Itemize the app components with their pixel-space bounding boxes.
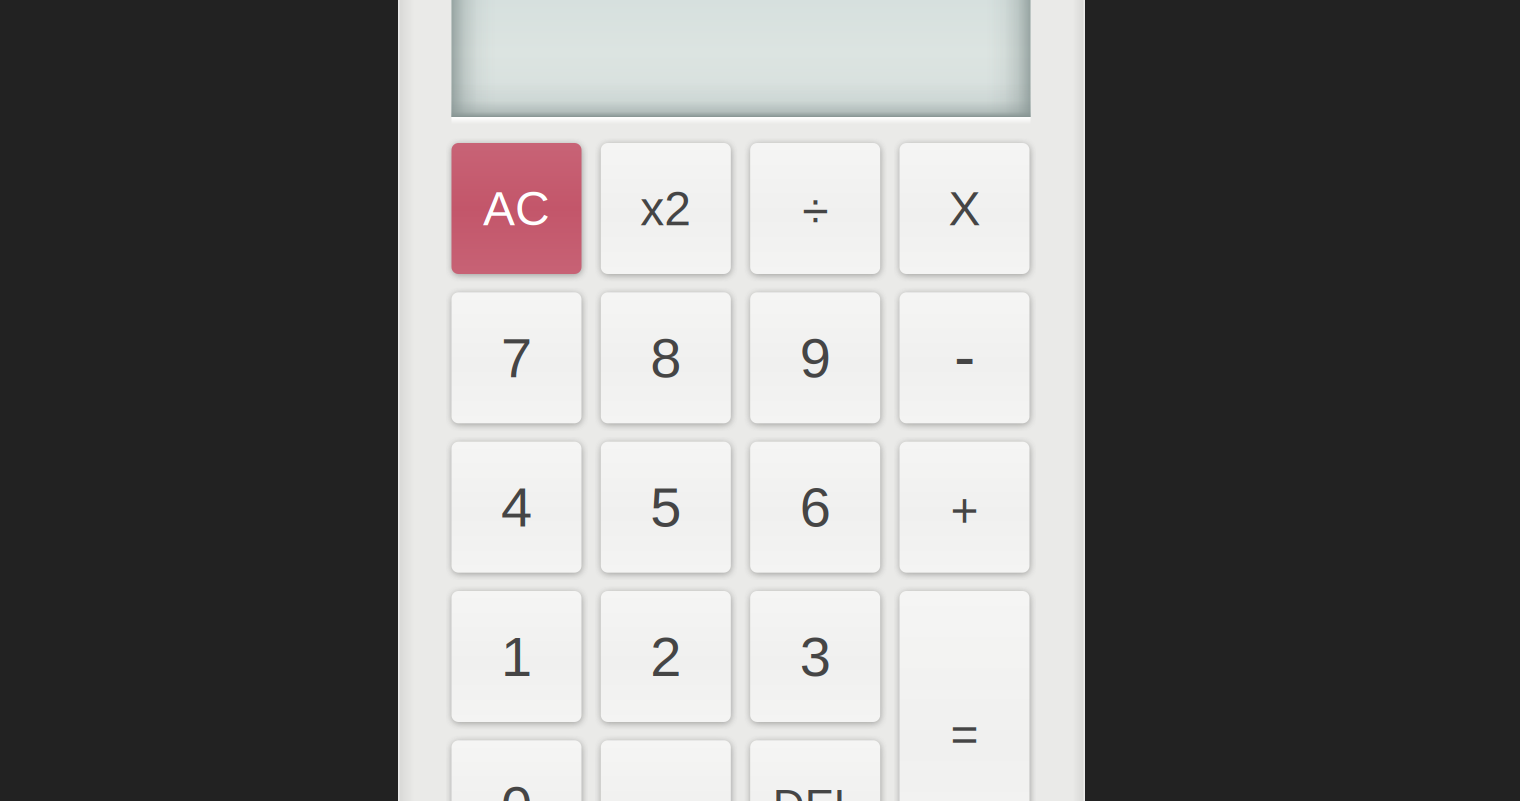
button[interactable]: x2 (601, 143, 731, 274)
button[interactable]: 7 (451, 292, 581, 423)
button[interactable]: 2 (601, 591, 731, 722)
button[interactable]: 9 (750, 292, 880, 423)
button[interactable]: 4 (451, 442, 581, 573)
staticText: 0 (501, 774, 532, 801)
button[interactable]: 8 (601, 292, 731, 423)
staticText: 4 (501, 476, 532, 538)
button[interactable]: 5 (601, 442, 731, 573)
staticText: x2 (640, 182, 691, 235)
button[interactable]: AC (451, 143, 581, 274)
staticText: DEL (773, 781, 858, 801)
staticText: - (954, 321, 975, 393)
staticText: 2 (650, 625, 681, 688)
button[interactable]: X (899, 143, 1029, 274)
button[interactable]: 3 (750, 591, 880, 722)
staticText: AC (483, 182, 550, 235)
staticText: = (950, 707, 978, 761)
button[interactable]: DEL (750, 740, 880, 801)
staticText: 6 (800, 476, 831, 538)
button[interactable]: ÷ (750, 143, 880, 274)
staticText: 8 (650, 326, 681, 389)
staticText: 3 (800, 625, 831, 688)
button[interactable]: 6 (750, 442, 880, 573)
button[interactable]: 0 (451, 740, 581, 801)
staticText: 1 (501, 625, 532, 688)
button[interactable]: - (899, 292, 1029, 423)
button[interactable]: 1 (451, 591, 581, 722)
staticText: 7 (501, 326, 532, 389)
staticText: 9 (800, 326, 831, 389)
staticText: ÷ (802, 184, 828, 237)
staticText: 5 (650, 476, 681, 538)
staticText: X (948, 182, 980, 235)
staticText: + (950, 483, 978, 537)
button[interactable]: = (899, 591, 1029, 801)
button[interactable]: + (899, 442, 1029, 573)
